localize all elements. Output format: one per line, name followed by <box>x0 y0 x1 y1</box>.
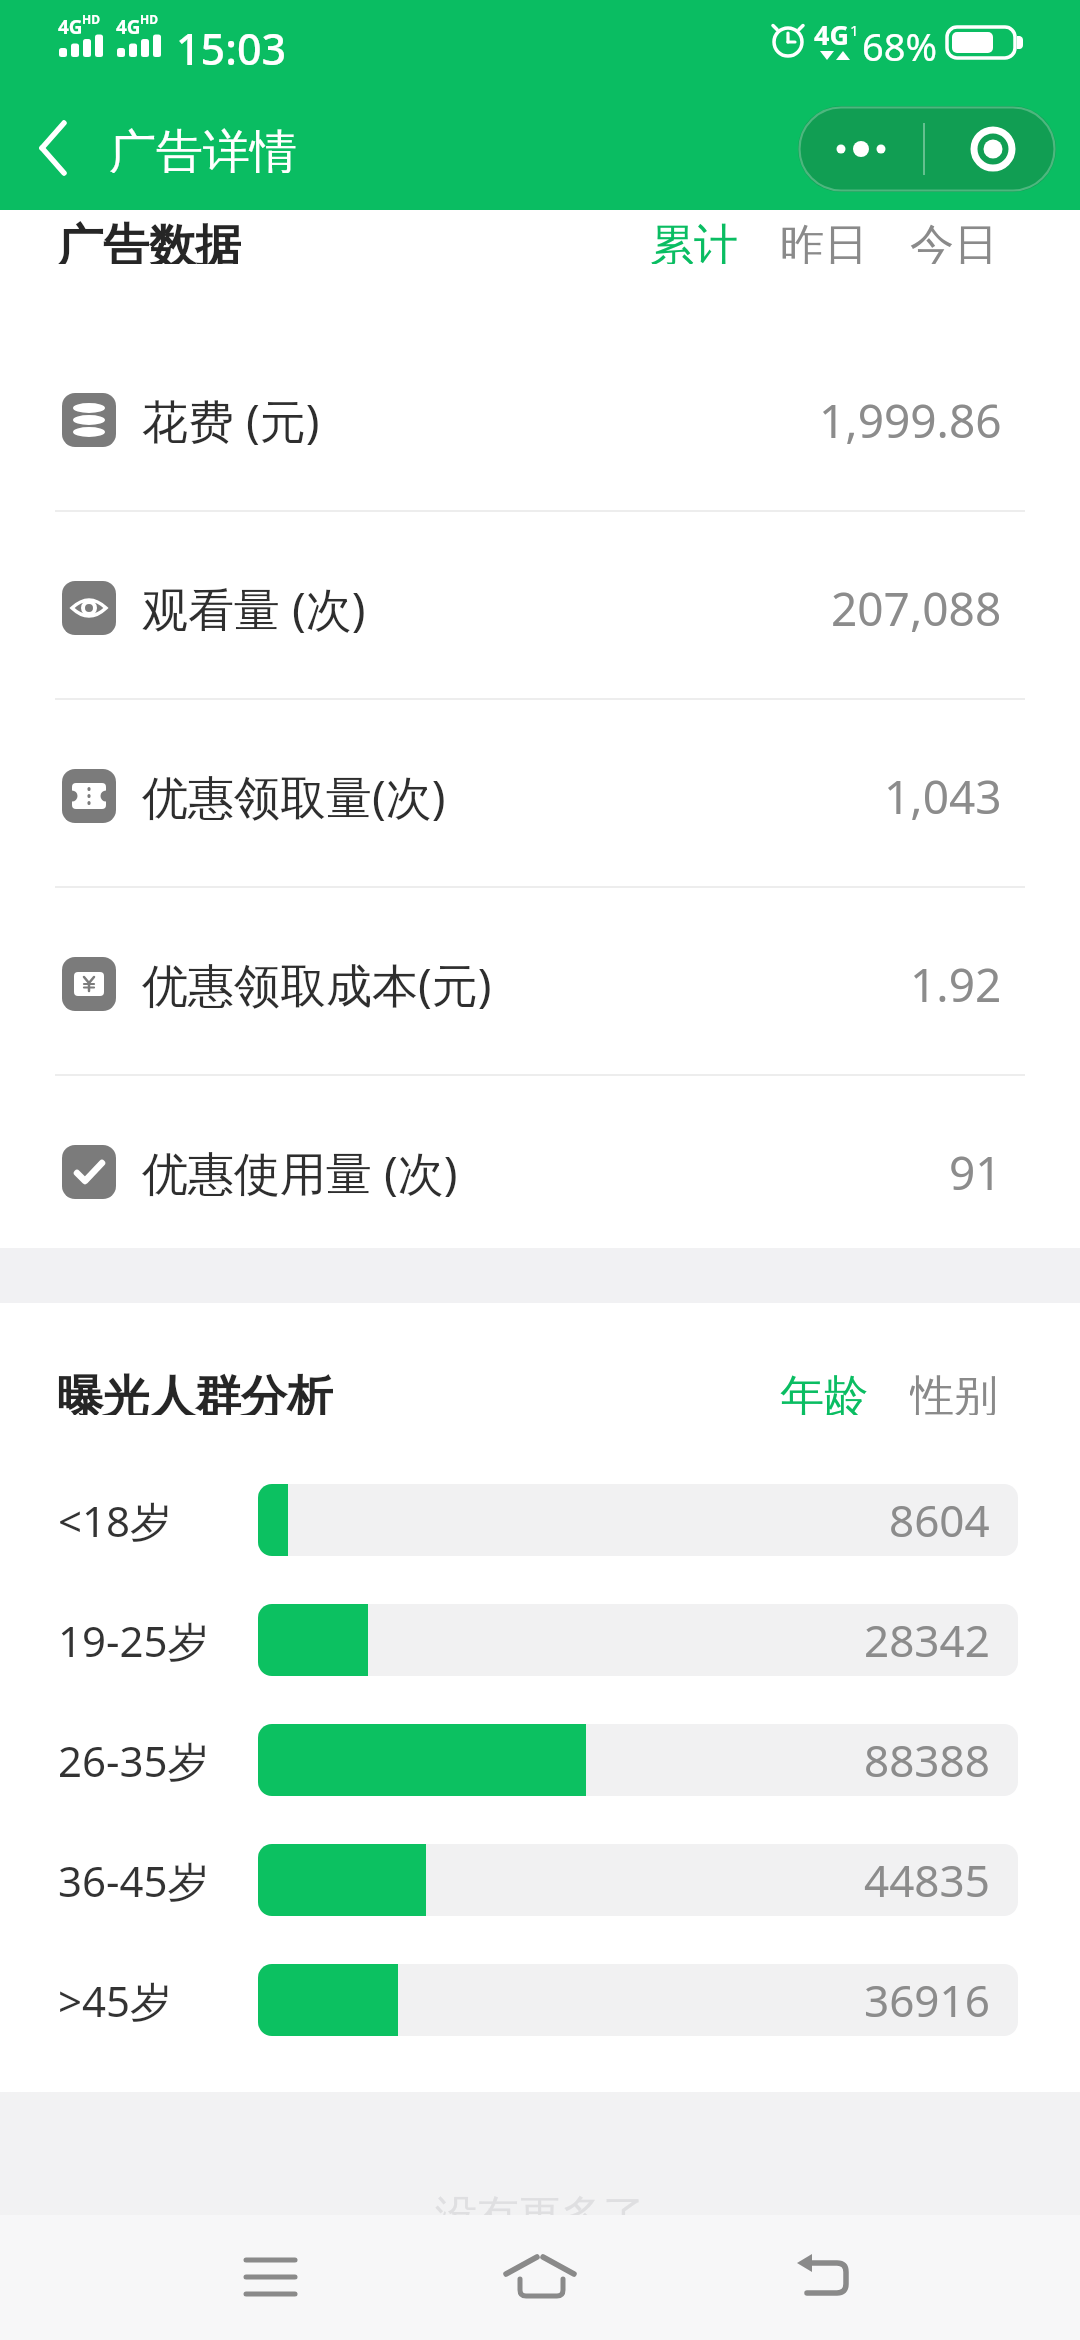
staticText: 优惠领取量(次) <box>142 765 446 828</box>
staticText: 68% <box>862 20 938 64</box>
staticText: 4G <box>116 14 141 36</box>
button[interactable] <box>927 106 1056 192</box>
button[interactable] <box>798 106 927 192</box>
button[interactable]: 性别 <box>910 1369 1000 1415</box>
staticText: 花费 (元) <box>142 389 320 452</box>
staticText: 4G <box>814 16 849 48</box>
staticText: HD <box>82 11 100 27</box>
staticText: 1 <box>850 20 859 40</box>
staticText: 曝光人群分析 <box>57 1369 333 1415</box>
button[interactable]: 年龄 <box>780 1369 870 1415</box>
staticText: 15:03 <box>176 19 287 67</box>
button[interactable] <box>0 2215 360 2340</box>
staticText: 4G <box>58 14 83 36</box>
staticText: 36-45岁 <box>58 1852 210 1909</box>
button[interactable]: 优惠领取成本(元) <box>0 890 1080 1078</box>
staticText: 26-35岁 <box>58 1732 210 1789</box>
staticText: 优惠使用量 (次) <box>142 1141 458 1204</box>
staticText: 1.92 <box>910 953 1002 1016</box>
button[interactable] <box>720 2215 1080 2340</box>
button[interactable]: 优惠领取量(次) <box>0 702 1080 890</box>
staticText: 广告详情 <box>109 123 297 173</box>
button[interactable]: 优惠使用量 (次) <box>0 1078 1080 1266</box>
staticText: 1,999.86 <box>819 389 1002 452</box>
button[interactable]: 观看量 (次) <box>0 514 1080 702</box>
staticText: 优惠领取成本(元) <box>142 953 492 1016</box>
staticText: 累计 <box>650 218 738 264</box>
staticText: 广告数据 <box>57 218 241 264</box>
staticText: HD <box>140 11 158 27</box>
staticText: >45岁 <box>58 1972 173 2029</box>
staticText: 1,043 <box>884 765 1002 828</box>
staticText: 8604 <box>889 1490 990 1550</box>
button[interactable]: 昨日 <box>780 218 870 264</box>
button[interactable] <box>20 110 90 186</box>
staticText: 207,088 <box>831 577 1002 640</box>
staticText: 今日 <box>910 218 998 264</box>
staticText: 28342 <box>864 1610 990 1670</box>
staticText: 88388 <box>864 1730 990 1790</box>
staticText: 91 <box>949 1141 1002 1204</box>
staticText: 观看量 (次) <box>142 577 366 640</box>
staticText: <18岁 <box>58 1492 173 1549</box>
staticText: 年龄 <box>780 1369 868 1415</box>
button[interactable]: 累计 <box>650 218 740 264</box>
staticText: 没有更多了 <box>435 2190 645 2243</box>
staticText: 36916 <box>864 1970 990 2030</box>
staticText: 性别 <box>910 1369 998 1415</box>
button[interactable]: 花费 (元) <box>0 326 1080 514</box>
staticText: 44835 <box>864 1850 990 1910</box>
staticText: 19-25岁 <box>58 1612 210 1669</box>
button[interactable] <box>360 2215 720 2340</box>
button[interactable]: 今日 <box>910 218 1000 264</box>
staticText: 昨日 <box>780 218 868 264</box>
